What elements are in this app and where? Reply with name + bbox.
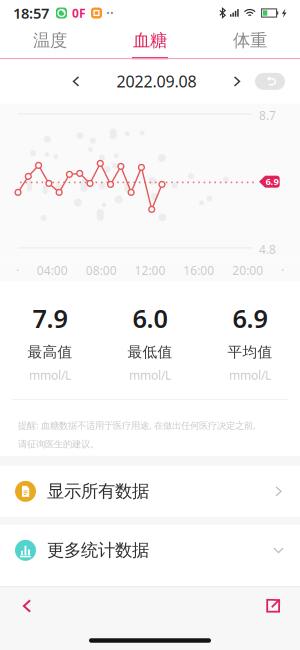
- staticText: 最高值: [27, 343, 72, 361]
- staticText: 16:00: [183, 262, 214, 278]
- button[interactable]: 体重: [200, 26, 300, 58]
- staticText: 平均值: [227, 343, 272, 361]
- staticText: mmol/L: [29, 367, 71, 383]
- staticText: ·: [281, 262, 284, 278]
- button[interactable]: 温度: [0, 26, 100, 58]
- staticText: 6.9: [232, 301, 267, 335]
- button[interactable]: Share: [253, 589, 293, 623]
- staticText: 最低值: [127, 343, 172, 361]
- staticText: mmol/L: [229, 367, 271, 383]
- button[interactable]: 更多统计数据: [0, 525, 300, 576]
- staticText: 12:00: [134, 262, 165, 278]
- staticText: 4.8: [259, 241, 276, 257]
- staticText: 温度: [33, 30, 67, 51]
- staticText: 6.9: [266, 175, 279, 187]
- staticText: 8.7: [259, 107, 276, 123]
- button[interactable]: Back: [7, 589, 47, 623]
- staticText: 0F: [72, 5, 86, 21]
- staticText: 更多统计数据: [47, 540, 149, 561]
- staticText: 04:00: [37, 262, 68, 278]
- staticText: ·: [16, 262, 19, 278]
- button[interactable]: Previous day: [62, 67, 90, 95]
- staticText: 08:00: [86, 262, 117, 278]
- button[interactable]: 血糖: [100, 26, 200, 58]
- staticText: 2022.09.08: [116, 71, 196, 92]
- staticText: 显示所有数据: [47, 481, 149, 502]
- staticText: 请征询医生的建议。: [18, 438, 99, 450]
- staticText: 体重: [233, 30, 267, 51]
- staticText: 20:00: [232, 262, 263, 278]
- button[interactable]: Reset to today: [255, 73, 285, 90]
- staticText: 7.9: [32, 301, 67, 335]
- staticText: 18:57: [13, 3, 49, 23]
- button[interactable]: Next day: [223, 67, 251, 95]
- staticText: 提醒: 血糖数据不适用于医疗用途, 在做出任何医疗决定之前,: [18, 419, 256, 431]
- button[interactable]: 显示所有数据: [0, 466, 300, 517]
- staticText: 血糖: [133, 30, 167, 51]
- staticText: 6.0: [132, 301, 167, 335]
- staticText: mmol/L: [129, 367, 171, 383]
